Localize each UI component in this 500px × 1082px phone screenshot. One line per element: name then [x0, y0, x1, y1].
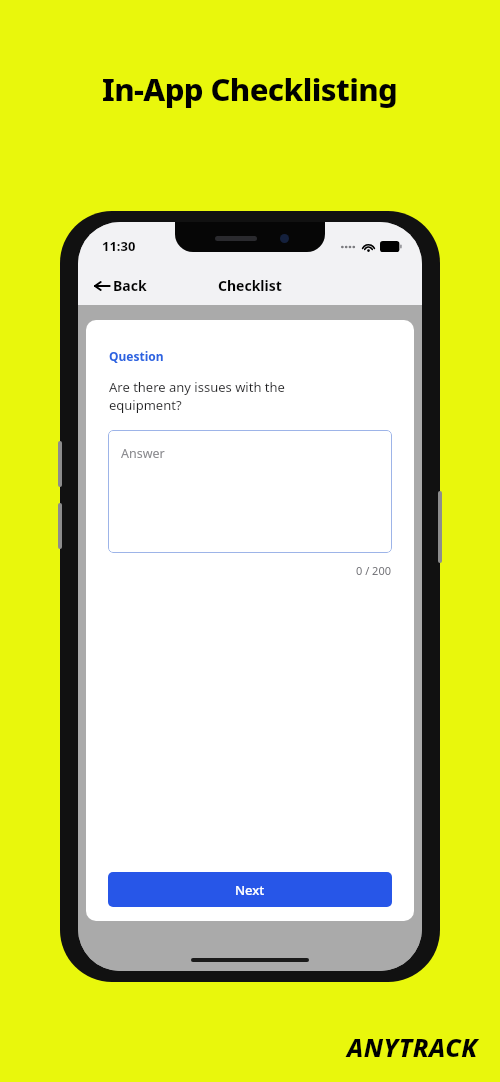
staticText: Are there any issues with the equipment?: [109, 378, 285, 414]
button[interactable]: Back: [86, 272, 155, 299]
staticText: 0 / 200: [86, 563, 391, 578]
staticText: Next: [235, 881, 265, 899]
staticText: ANYTRACK: [347, 1030, 478, 1064]
staticText: In-App Checklisting: [102, 68, 398, 110]
staticText: Question: [109, 348, 164, 364]
staticText: Checklist: [218, 276, 282, 295]
staticText: Answer: [121, 445, 165, 462]
staticText: Back: [113, 276, 147, 295]
button[interactable]: Next: [108, 872, 392, 907]
staticText: 11:30: [102, 237, 136, 255]
button[interactable]: Answer: [108, 430, 392, 553]
